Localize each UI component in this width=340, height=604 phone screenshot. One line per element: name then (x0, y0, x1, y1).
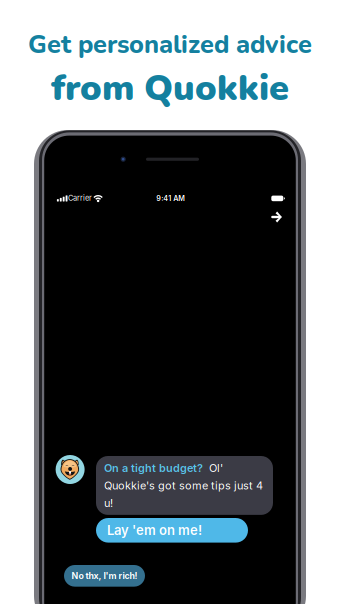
staticText: No thx, I'm rich! (71, 570, 137, 581)
staticText: Carrier (68, 194, 92, 203)
staticText: Lay 'em on me! (107, 522, 202, 538)
button[interactable]: No thx, I'm rich! (64, 565, 145, 587)
staticText: from Quokkie (51, 63, 289, 113)
button[interactable]: Skip (257, 203, 296, 231)
staticText: Get personalized advice (28, 27, 312, 62)
staticText: 9:41 AM (156, 194, 185, 203)
staticText: On a tight budget? Ol' Quokkie's got som… (104, 461, 263, 509)
button[interactable]: Lay 'em on me! (96, 518, 248, 543)
